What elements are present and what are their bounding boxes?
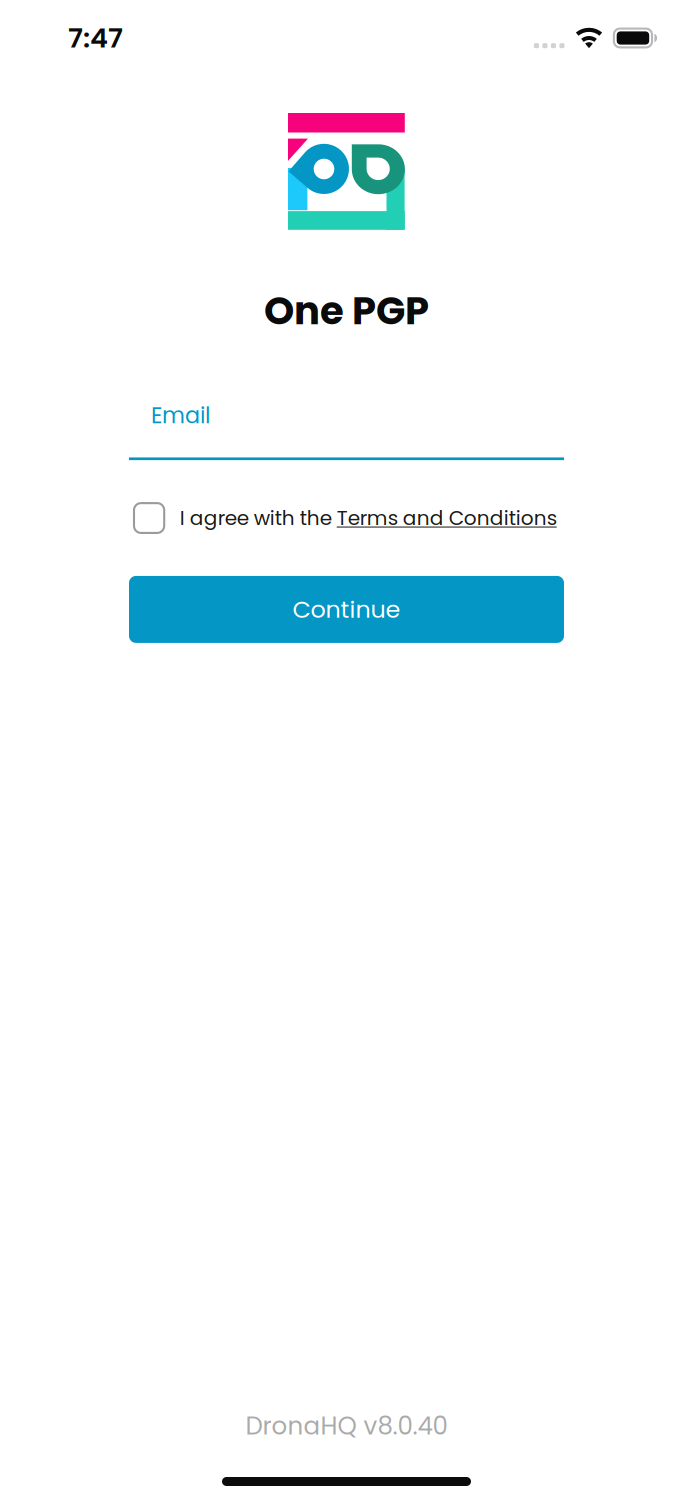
- staticText: 7:47: [68, 19, 123, 57]
- staticText: I agree with the Terms and Conditions: [180, 504, 557, 532]
- staticText: One PGP: [264, 284, 429, 338]
- staticText: DronaHQ v8.0.40: [245, 1409, 447, 1443]
- staticText: Email: [151, 400, 210, 431]
- button[interactable]: I agree with the Terms and Conditions: [129, 503, 564, 533]
- button[interactable]: Continue: [129, 576, 564, 643]
- staticText: Continue: [292, 593, 400, 626]
